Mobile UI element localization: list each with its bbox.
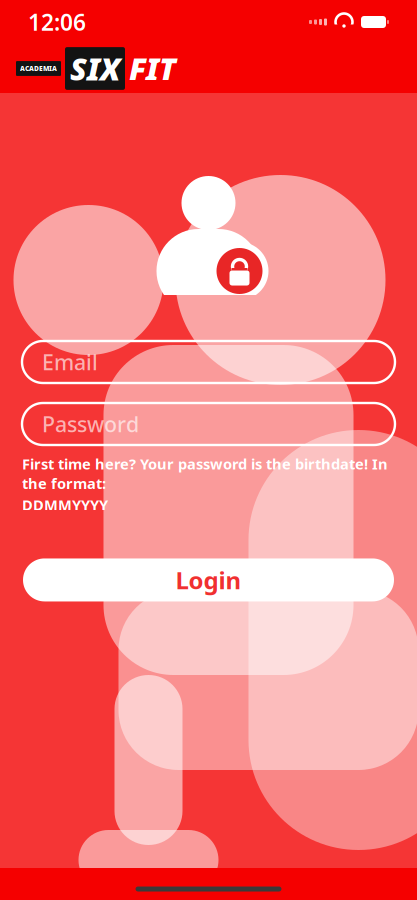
button[interactable]: Password: [22, 403, 395, 445]
staticText: First time here? Your password is the bi…: [22, 454, 388, 493]
staticText: Email: [42, 348, 98, 376]
staticText: ACADEMIA: [20, 64, 57, 73]
staticText: DDMMYYYY: [22, 495, 108, 514]
staticText: Password: [42, 410, 139, 438]
button[interactable]: Login: [23, 558, 394, 601]
staticText: 12:06: [28, 7, 86, 37]
staticText: FIT: [129, 48, 176, 89]
staticText: SIX: [70, 48, 120, 89]
staticText: Login: [175, 564, 241, 596]
button[interactable]: Email: [22, 341, 395, 383]
